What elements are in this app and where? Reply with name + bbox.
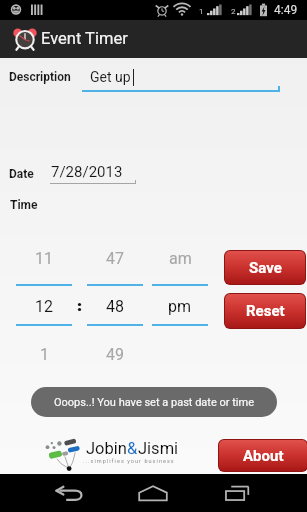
button[interactable]: Event Timer [0, 20, 307, 58]
staticText: Jobin [86, 439, 127, 458]
staticText: About [243, 447, 284, 465]
button[interactable]: Recent apps [208, 474, 266, 512]
staticText: 7/28/2013 [51, 163, 123, 181]
button[interactable]: About [219, 440, 307, 471]
staticText: Event Timer [41, 29, 128, 48]
button[interactable]: 1 [16, 329, 72, 363]
staticText: Date [9, 167, 34, 181]
button[interactable]: Reset [225, 294, 305, 328]
staticText: Jismi [138, 439, 179, 458]
button[interactable]: 11 [16, 239, 72, 279]
staticText: 12 [35, 297, 53, 316]
button[interactable]: 49 [87, 329, 143, 363]
staticText: Description [9, 70, 71, 84]
button[interactable]: Get up [82, 64, 280, 92]
button[interactable]: 48 [87, 287, 143, 325]
button[interactable]: am [152, 239, 208, 279]
button[interactable]: Save [225, 251, 305, 284]
staticText: Ooops..! You have set a past date or tim… [54, 396, 254, 409]
staticText: Reset [246, 302, 285, 320]
staticText: 4:49 [274, 3, 298, 17]
staticText: 49 [106, 345, 124, 364]
staticText: Time [10, 198, 38, 212]
staticText: am [169, 249, 192, 268]
staticText: 48 [106, 297, 124, 316]
staticText: & [127, 439, 138, 458]
staticText: Save [249, 259, 282, 277]
staticText: 2 [231, 7, 236, 16]
button[interactable]: 12 [16, 287, 72, 325]
staticText: 47 [106, 249, 124, 268]
button[interactable]: Description [0, 63, 82, 91]
button[interactable]: 7/28/2013 [50, 158, 136, 184]
staticText: 11 [35, 249, 53, 268]
staticText: 1 [40, 345, 49, 364]
button[interactable]: 47 [87, 239, 143, 279]
button[interactable]: Back [40, 474, 98, 512]
staticText: ...simplifies your business [83, 458, 175, 464]
button[interactable]: pm [152, 287, 208, 325]
staticText: pm [168, 297, 192, 316]
staticText: 1 [199, 7, 204, 16]
button[interactable]: Home [124, 474, 182, 512]
staticText: Get up [90, 69, 131, 85]
